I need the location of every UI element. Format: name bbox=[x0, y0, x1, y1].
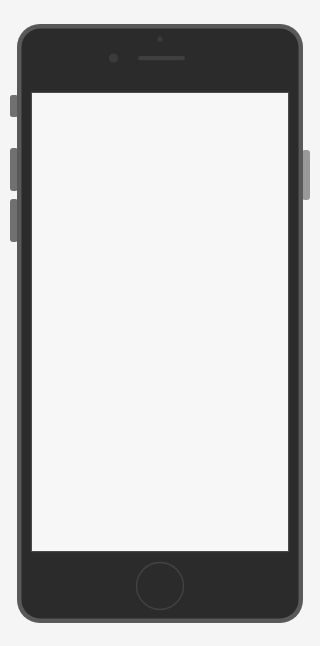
button[interactable]: Smartphone device mockup bbox=[0, 0, 320, 646]
